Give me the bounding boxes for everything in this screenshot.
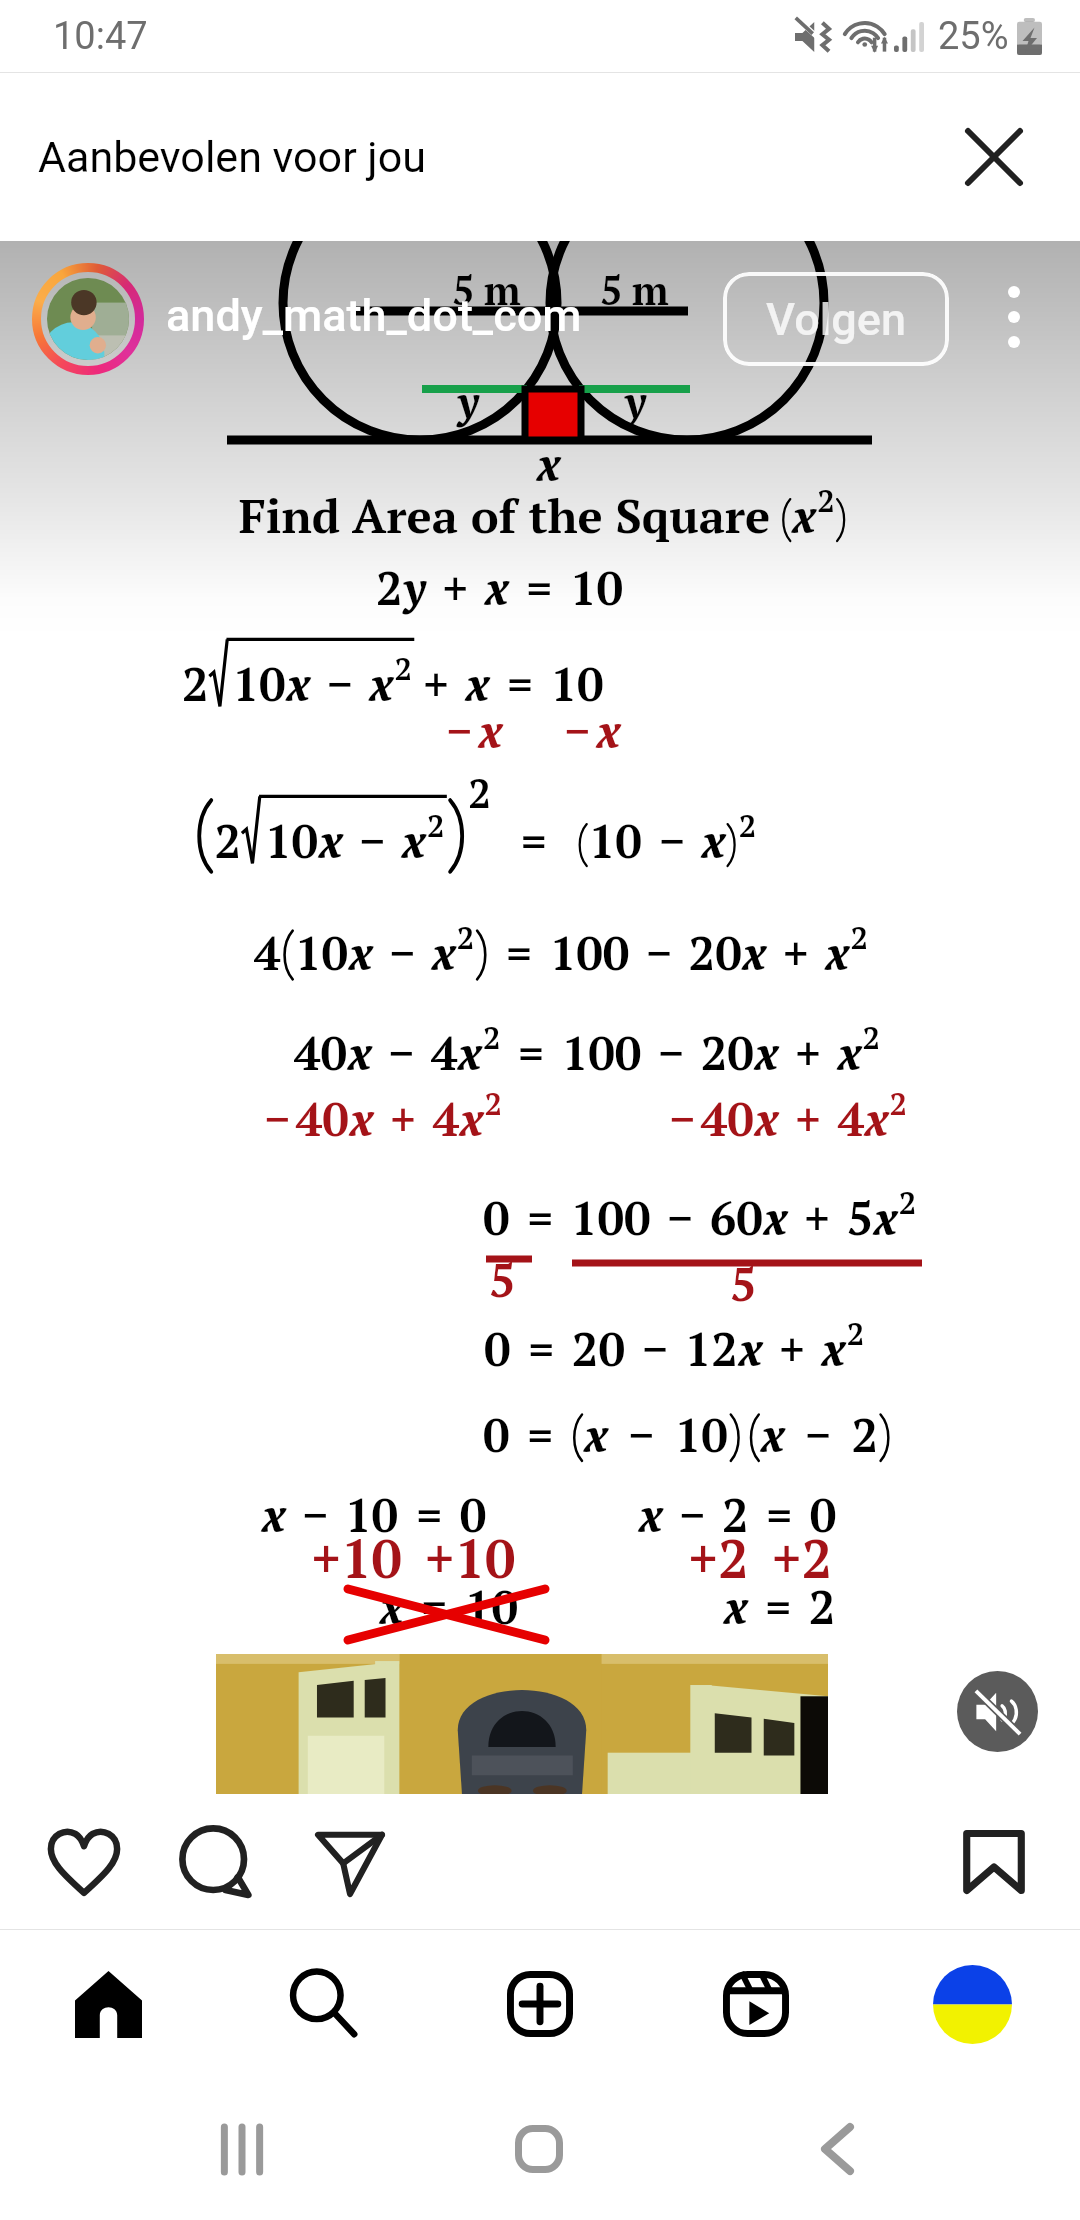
button[interactable]: Create <box>496 1960 584 2048</box>
button[interactable]: More options <box>978 281 1050 353</box>
button[interactable]: Search <box>280 1960 368 2048</box>
staticText: Aanbevolen voor jou <box>38 132 426 182</box>
button[interactable]: Profile picture <box>32 263 144 375</box>
button[interactable]: Unmute <box>957 1671 1038 1752</box>
button[interactable]: Comment <box>173 1819 259 1905</box>
button[interactable]: Reels <box>712 1960 800 2048</box>
button[interactable]: Home <box>64 1960 152 2048</box>
button[interactable]: Back <box>782 2094 892 2204</box>
button[interactable]: Home <box>484 2094 594 2204</box>
staticText: Volgen <box>766 293 906 346</box>
button[interactable]: Recents <box>187 2094 297 2204</box>
button[interactable]: Volgen <box>723 272 949 366</box>
button[interactable]: Save <box>951 1819 1037 1905</box>
button[interactable]: Like <box>41 1819 127 1905</box>
button[interactable]: Share <box>307 1819 393 1905</box>
button[interactable]: Profile <box>928 1960 1016 2048</box>
staticText: 10:47 <box>53 14 148 59</box>
button[interactable]: Close <box>951 114 1037 200</box>
staticText: andy_math_dot_com <box>166 289 582 342</box>
staticText: 25% <box>938 14 1009 59</box>
